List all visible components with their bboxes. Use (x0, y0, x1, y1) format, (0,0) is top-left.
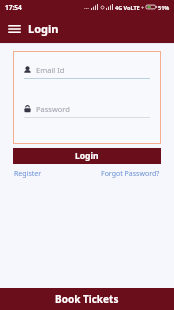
staticText: 51% (158, 4, 170, 11)
staticText: 4G VoLTE (115, 4, 140, 11)
button[interactable]: Book Tickets (0, 288, 174, 310)
staticText: Login (75, 150, 99, 162)
staticText: Register (14, 169, 42, 179)
staticText: 17:54 (5, 3, 22, 12)
button[interactable]: Register (14, 169, 42, 179)
staticText: ... (84, 3, 89, 11)
staticText: Forgot Password? (101, 169, 160, 179)
staticText: Email Id (36, 65, 65, 75)
staticText: Book Tickets (55, 292, 119, 306)
button[interactable]: Open navigation menu (7, 22, 21, 36)
staticText: + (141, 4, 145, 11)
button[interactable]: Email Id input (24, 65, 150, 79)
button[interactable]: Forgot Password? (101, 169, 160, 179)
staticText: Login (28, 21, 59, 36)
staticText: Password (36, 104, 70, 114)
button[interactable]: Password input (24, 104, 150, 118)
button[interactable]: Login (13, 148, 161, 164)
